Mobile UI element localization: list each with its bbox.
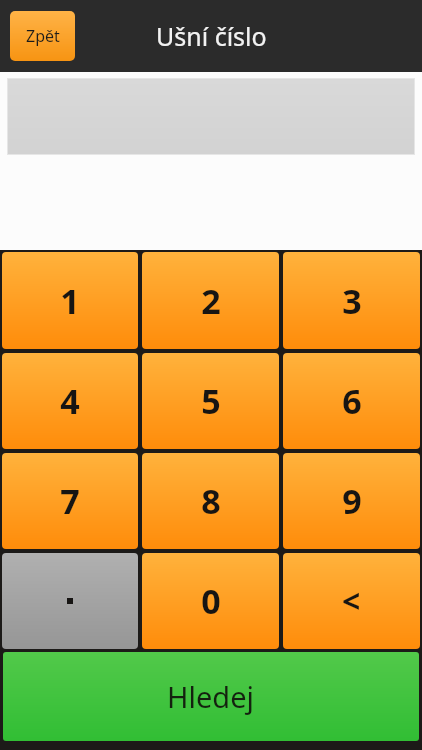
button[interactable]: 6	[283, 353, 420, 449]
button[interactable]: 8	[142, 453, 279, 549]
button[interactable]: 1	[2, 252, 138, 349]
staticText: Zpět	[26, 25, 60, 47]
staticText: 7	[60, 478, 80, 524]
button[interactable]: Decimal point	[2, 553, 138, 649]
staticText: Ušní číslo	[156, 19, 267, 53]
button[interactable]	[7, 78, 415, 155]
button[interactable]: 5	[142, 353, 279, 449]
button[interactable]: 2	[142, 252, 279, 349]
staticText: 3	[342, 278, 362, 324]
staticText: 8	[201, 478, 221, 524]
button[interactable]: Zpět	[10, 11, 75, 61]
button[interactable]: 9	[283, 453, 420, 549]
staticText: 0	[201, 578, 221, 624]
button[interactable]: Hledej	[3, 652, 419, 741]
button[interactable]: Backspace	[283, 553, 420, 649]
staticText: Hledej	[167, 677, 255, 716]
staticText: 1	[60, 278, 80, 324]
button[interactable]: 0	[142, 553, 279, 649]
button[interactable]: 3	[283, 252, 420, 349]
staticText: 6	[342, 378, 362, 424]
staticText: 4	[60, 378, 80, 424]
staticText: 9	[342, 478, 362, 524]
staticText: <	[342, 579, 361, 623]
button[interactable]: 4	[2, 353, 138, 449]
button[interactable]: 7	[2, 453, 138, 549]
staticText: 5	[201, 378, 221, 424]
staticText: 2	[201, 278, 221, 324]
